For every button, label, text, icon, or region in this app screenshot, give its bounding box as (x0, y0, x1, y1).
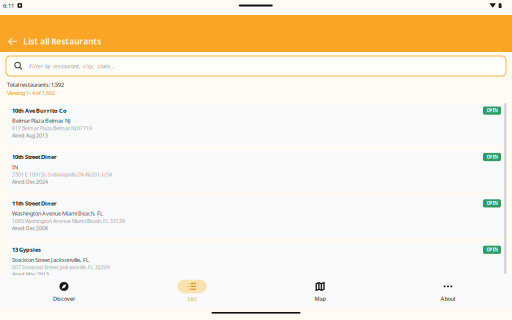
button[interactable]: 13 Gypsies (7, 243, 504, 284)
staticText: 3301 E 10th St, Indianapolis, IN 46201, … (12, 171, 112, 178)
staticText: List (187, 295, 196, 302)
button[interactable]: About (384, 276, 512, 306)
staticText: OPEN (486, 108, 497, 113)
button[interactable]: Map (256, 276, 384, 306)
staticText: Stockton Street Jacksonville, FL (12, 256, 89, 264)
button[interactable]: 10th Ave Burrito Co (7, 103, 504, 145)
staticText: OPEN (486, 200, 497, 206)
staticText: Discover (53, 295, 75, 302)
staticText: Aired: May 2013 (12, 271, 49, 278)
staticText: Filter by restaurant, city, state... (29, 62, 116, 70)
button[interactable]: Discover (0, 276, 128, 306)
button[interactable]: List (128, 276, 256, 306)
staticText: 1065 Washington Avenue Miami Beach, FL 3… (12, 218, 125, 224)
staticText: 13 Gypsies (12, 246, 41, 253)
staticText: IN (12, 163, 18, 171)
staticText: 817 Belmar Plaza Belmar, NJ 07719 (12, 125, 92, 132)
staticText: About (440, 295, 455, 302)
staticText: Belmar Plaza Belmar, NJ (12, 117, 71, 124)
staticText: 10th Street Diner (12, 153, 57, 161)
staticText: Aired: Dec 2008 (12, 225, 48, 232)
staticText: Aired: Aug 2013 (12, 132, 48, 139)
staticText: 6:11 (3, 1, 14, 9)
staticText: Map (314, 295, 325, 302)
staticText: Washington Avenue Miami Beach, FL (12, 210, 103, 217)
staticText: 007 Stockton Street Jacksonville, FL 322… (12, 264, 110, 271)
staticText: OPEN (486, 247, 497, 253)
button[interactable]: Filter by restaurant, city, state... (6, 56, 506, 76)
staticText: OPEN (486, 154, 497, 160)
button[interactable]: 10th Street Diner (7, 150, 504, 191)
staticText: Total restaurants: 1,592 (7, 81, 64, 88)
staticText: Aired: Dec 2024 (12, 179, 48, 185)
button[interactable]: Back (4, 31, 21, 52)
button[interactable]: 11th Street Diner (7, 196, 504, 238)
staticText: Viewing 1–4 of 1,592 (7, 89, 55, 97)
staticText: 11th Street Diner (12, 199, 57, 207)
staticText: 10th Ave Burrito Co (12, 106, 67, 114)
staticText: List all Restaurants (23, 36, 101, 47)
